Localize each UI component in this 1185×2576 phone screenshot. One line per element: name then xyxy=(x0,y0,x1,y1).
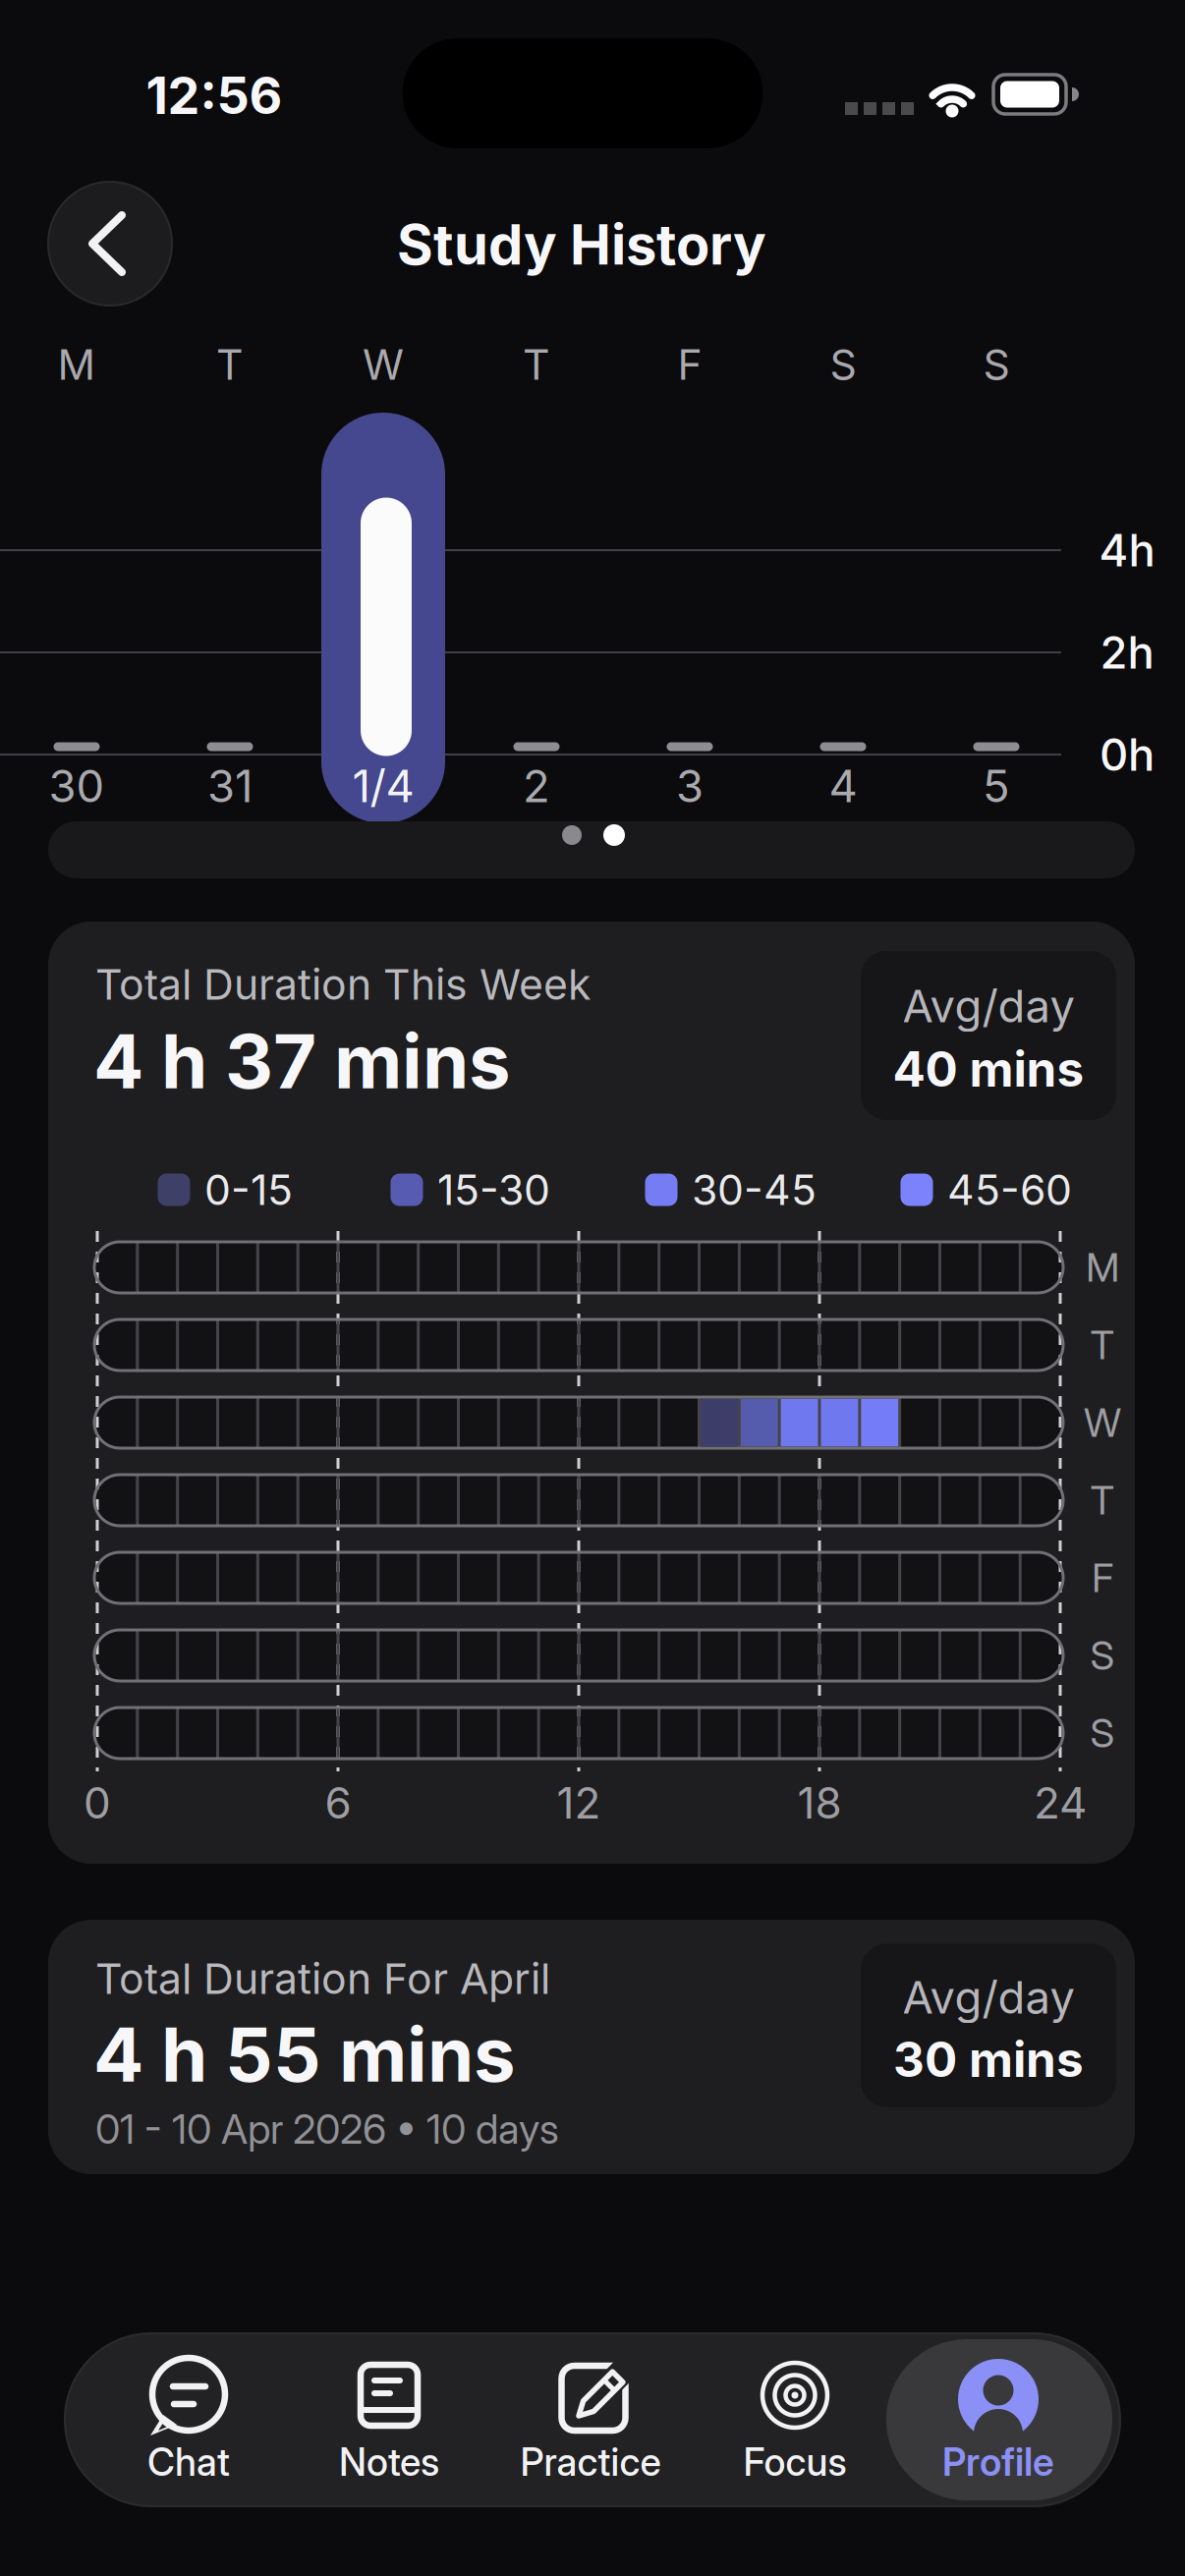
staticText: 30 xyxy=(49,760,105,812)
staticText: 12:56 xyxy=(146,65,282,125)
staticText: W xyxy=(363,340,404,389)
staticText: Total Duration This Week xyxy=(95,960,591,1009)
staticText: T xyxy=(1090,1477,1115,1523)
staticText: 4h xyxy=(1099,524,1155,577)
staticText: S xyxy=(1090,1632,1115,1679)
button[interactable]: 1/4 xyxy=(321,413,445,823)
staticText: Practice xyxy=(520,2440,661,2484)
staticText: 0h xyxy=(1100,728,1155,781)
staticText: 3 xyxy=(676,760,704,812)
staticText: F xyxy=(1092,1555,1113,1601)
staticText: 18 xyxy=(797,1777,842,1828)
staticText: Chat xyxy=(147,2440,230,2484)
staticText: 15-30 xyxy=(437,1165,550,1214)
staticText: Notes xyxy=(339,2440,439,2484)
staticText: 0-15 xyxy=(204,1165,293,1214)
staticText: 01 - 10 Apr 2026 • 10 days xyxy=(95,2105,559,2153)
staticText: T xyxy=(216,340,244,389)
staticText: 0 xyxy=(84,1777,111,1828)
staticText: 5 xyxy=(983,760,1010,812)
button[interactable]: Focus xyxy=(751,2359,839,2485)
staticText: 31 xyxy=(207,760,253,812)
staticText: 4 h 55 mins xyxy=(93,2010,516,2098)
staticText: Avg/day xyxy=(903,980,1074,1032)
staticText: Study History xyxy=(397,212,766,277)
staticText: 40 mins xyxy=(893,1040,1084,1098)
staticText: 4 h 37 mins xyxy=(93,1017,511,1105)
staticText: M xyxy=(1086,1244,1119,1291)
staticText: 6 xyxy=(325,1777,351,1828)
staticText: S xyxy=(983,340,1010,389)
staticText: 30 mins xyxy=(893,2031,1084,2088)
staticText: Profile xyxy=(942,2440,1054,2484)
staticText: F xyxy=(677,340,702,389)
staticText: 2h xyxy=(1100,626,1154,679)
staticText: 2 xyxy=(523,760,550,812)
staticText: Focus xyxy=(743,2440,846,2484)
button[interactable]: Chat xyxy=(144,2359,233,2485)
button[interactable]: Profile xyxy=(954,2359,1043,2485)
staticText: Total Duration For April xyxy=(95,1954,550,2003)
staticText: T xyxy=(1090,1322,1115,1368)
staticText: Avg/day xyxy=(903,1971,1074,2024)
staticText: M xyxy=(57,340,96,389)
button[interactable]: Notes xyxy=(345,2359,433,2485)
staticText: 4 xyxy=(829,760,857,812)
button[interactable]: Practice xyxy=(541,2359,640,2485)
staticText: S xyxy=(1090,1710,1115,1756)
button[interactable] xyxy=(48,182,172,306)
staticText: 30-45 xyxy=(692,1165,817,1214)
staticText: 12 xyxy=(557,1777,601,1828)
staticText: W xyxy=(1084,1399,1121,1446)
staticText: T xyxy=(523,340,550,389)
staticText: 24 xyxy=(1034,1777,1087,1828)
staticText: 45-60 xyxy=(947,1165,1072,1214)
staticText: 1/4 xyxy=(352,760,414,812)
staticText: S xyxy=(830,340,856,389)
